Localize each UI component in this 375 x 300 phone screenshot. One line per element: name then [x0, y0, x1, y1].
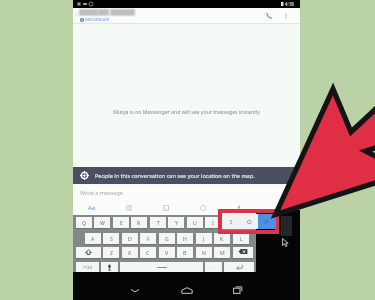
staticText: C	[146, 249, 150, 256]
button[interactable]: Recent apps	[224, 280, 252, 300]
button[interactable]: Y	[168, 217, 184, 228]
button[interactable]: Space	[120, 262, 203, 273]
button[interactable]: U	[187, 217, 203, 228]
button[interactable]: E	[113, 217, 129, 228]
button[interactable]: R	[131, 217, 147, 228]
button[interactable]: Back	[121, 280, 149, 300]
button[interactable]: Voice input	[101, 262, 118, 273]
staticText: B	[183, 249, 187, 256]
button[interactable]: Keyboard tool	[221, 200, 256, 215]
button[interactable]: Enter	[224, 262, 254, 273]
button[interactable]: D	[122, 233, 138, 244]
button[interactable]: T	[150, 217, 166, 228]
staticText: Write a message	[80, 189, 123, 196]
staticText: G	[165, 235, 169, 242]
staticText: U	[193, 219, 197, 226]
staticText: H	[183, 235, 187, 242]
staticText: L	[240, 235, 243, 242]
staticText: MESSENGER	[85, 17, 110, 23]
staticText: X	[128, 249, 132, 256]
button[interactable]: Symbols	[76, 262, 99, 273]
staticText: Y	[175, 219, 178, 226]
staticText: P	[265, 218, 269, 226]
button[interactable]: Period	[205, 262, 222, 273]
button[interactable]: Z	[103, 247, 119, 258]
button[interactable]: C	[140, 247, 156, 258]
staticText: K	[220, 235, 224, 242]
button[interactable]: P	[242, 217, 258, 228]
button[interactable]: N	[196, 247, 212, 258]
button[interactable]: I	[205, 217, 221, 228]
button[interactable]: Call	[261, 8, 277, 24]
staticText: R	[137, 219, 141, 226]
button[interactable]: Shift	[76, 247, 101, 258]
button[interactable]: Home	[173, 280, 201, 300]
staticText: F	[147, 235, 150, 242]
button[interactable]: X	[122, 247, 138, 258]
button[interactable]: L	[233, 233, 249, 244]
button[interactable]: Aa	[73, 200, 110, 215]
button[interactable]: O	[240, 214, 258, 229]
staticText: A	[91, 235, 95, 242]
button[interactable]: Keyboard tool	[147, 200, 184, 215]
staticText: D	[128, 235, 132, 242]
staticText: Q	[82, 219, 87, 226]
staticText: J	[203, 235, 205, 242]
button[interactable]: F	[140, 233, 156, 244]
staticText: O	[247, 218, 252, 226]
button[interactable]: O	[224, 217, 240, 228]
staticText: N	[202, 249, 206, 256]
button[interactable]: G	[159, 233, 175, 244]
staticText: W	[100, 219, 105, 226]
staticText: Z	[110, 249, 113, 256]
button[interactable]: Q	[76, 217, 92, 228]
button[interactable]: More options	[279, 8, 293, 24]
button[interactable]: K	[214, 233, 230, 244]
button[interactable]: V	[159, 247, 175, 258]
button[interactable]: Backspace	[233, 247, 253, 258]
button[interactable]: B	[177, 247, 193, 258]
staticText: E	[120, 219, 123, 226]
staticText: Mutya is on Messenger and will see your …	[113, 108, 260, 115]
button[interactable]: A	[85, 233, 101, 244]
button[interactable]: I	[222, 214, 240, 229]
staticText: S	[110, 235, 113, 242]
button[interactable]: Keyboard tool	[110, 200, 147, 215]
staticText: ?123	[83, 265, 93, 271]
staticText: .	[213, 264, 215, 271]
staticText: V	[165, 249, 169, 256]
staticText: T	[157, 219, 160, 226]
staticText: 4:18	[285, 1, 294, 7]
staticText: M	[220, 249, 225, 256]
button[interactable]: P	[258, 214, 276, 229]
staticText: Aa	[88, 204, 96, 212]
staticText: P	[248, 219, 252, 226]
button[interactable]: H	[177, 233, 193, 244]
staticText: I	[212, 219, 214, 226]
button[interactable]: J	[196, 233, 212, 244]
button[interactable]: M	[214, 247, 230, 258]
staticText: I	[230, 218, 233, 226]
button[interactable]: Keyboard tool	[184, 200, 221, 215]
button[interactable]: W	[94, 217, 110, 228]
button[interactable]: S	[103, 233, 119, 244]
staticText: People in this conversation can see your…	[95, 172, 255, 180]
staticText: O	[230, 219, 235, 226]
button[interactable]: People in this conversation can see your…	[73, 167, 300, 184]
